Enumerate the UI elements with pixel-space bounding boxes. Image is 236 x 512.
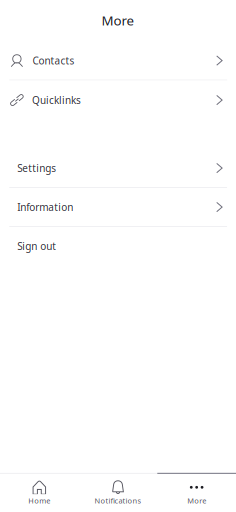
button[interactable]: Quicklinks (0, 93, 236, 107)
staticText: More (187, 496, 206, 506)
staticText: Contacts (32, 54, 74, 67)
button[interactable]: Contacts (0, 54, 236, 67)
button[interactable]: Sign out (0, 239, 236, 253)
button[interactable]: Settings (0, 161, 236, 175)
button[interactable]: Home (0, 474, 79, 512)
staticText: Notifications (94, 496, 141, 506)
staticText: Settings (17, 161, 56, 175)
staticText: Sign out (17, 239, 56, 253)
staticText: Information (17, 200, 73, 214)
button[interactable]: Information (0, 200, 236, 214)
button[interactable]: More (157, 474, 236, 512)
staticText: Quicklinks (32, 93, 81, 107)
staticText: More (101, 11, 134, 29)
button[interactable]: Notifications (79, 474, 157, 512)
staticText: Home (28, 496, 50, 506)
